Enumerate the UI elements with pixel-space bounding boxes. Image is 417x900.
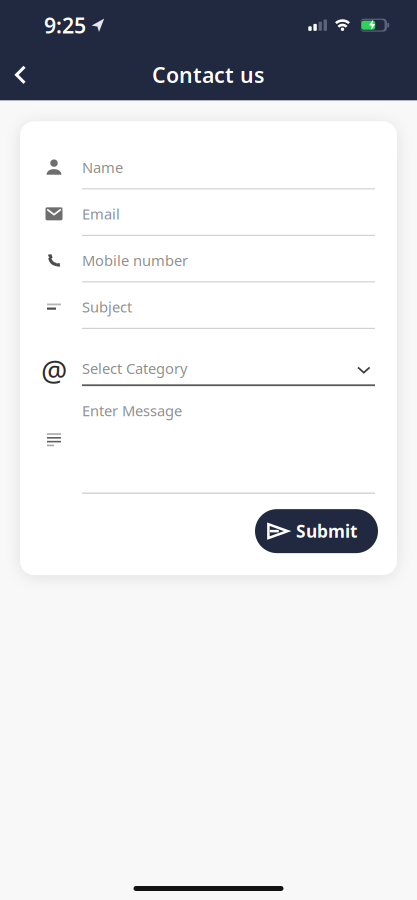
staticText: Enter Message bbox=[82, 401, 182, 420]
button[interactable]: Submit bbox=[255, 509, 378, 553]
staticText: Select Category bbox=[82, 359, 187, 378]
staticText: Email bbox=[82, 204, 120, 224]
staticText: 9:25 bbox=[44, 11, 86, 39]
staticText: Contact us bbox=[152, 61, 265, 89]
button[interactable]: @ bbox=[45, 360, 375, 386]
button[interactable]: Back bbox=[0, 57, 26, 92]
staticText: Mobile number bbox=[82, 251, 188, 270]
staticText: Submit bbox=[296, 520, 358, 543]
staticText: Subject bbox=[82, 297, 132, 317]
staticText: @ bbox=[41, 351, 67, 390]
staticText: Name bbox=[82, 158, 123, 177]
